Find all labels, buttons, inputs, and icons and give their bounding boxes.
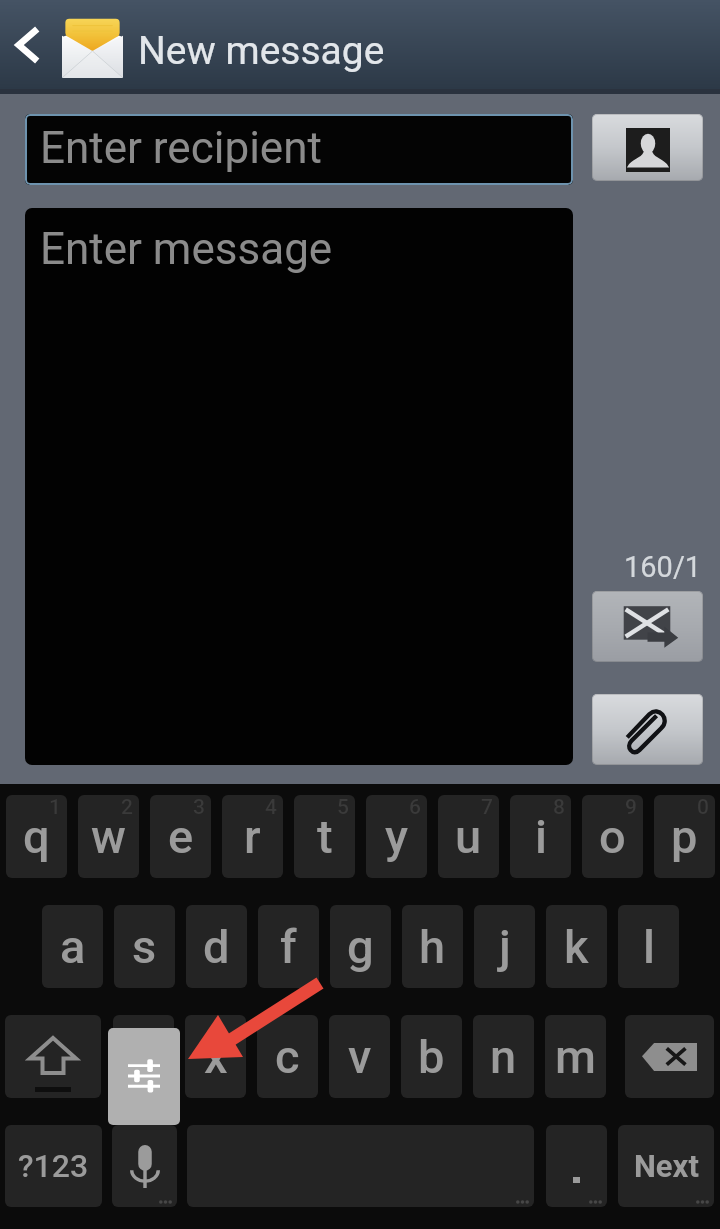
- staticText: a: [60, 919, 86, 974]
- button[interactable]: p: [654, 795, 715, 878]
- button[interactable]: e: [150, 795, 211, 878]
- staticText: 160/1: [624, 550, 702, 584]
- button[interactable]: Send message: [592, 591, 703, 662]
- staticText: 1: [49, 795, 61, 820]
- button[interactable]: r: [222, 795, 283, 878]
- staticText: 4: [265, 795, 277, 820]
- staticText: v: [348, 1029, 372, 1084]
- button[interactable]: g: [330, 905, 391, 988]
- staticText: p: [671, 809, 698, 864]
- button[interactable]: Navigate up: [0, 0, 56, 89]
- button[interactable]: w: [78, 795, 139, 878]
- button[interactable]: Next: [618, 1125, 714, 1207]
- staticText: w: [91, 809, 126, 864]
- button[interactable]: Voice input: [112, 1125, 177, 1207]
- staticText: s: [132, 919, 157, 974]
- button[interactable]: u: [438, 795, 499, 878]
- button[interactable]: c: [257, 1015, 318, 1098]
- staticText: New message: [138, 28, 385, 74]
- button[interactable]: Shift: [5, 1015, 101, 1098]
- button[interactable]: l: [618, 905, 679, 988]
- staticText: 8: [553, 795, 565, 820]
- button[interactable]: Attach file: [592, 694, 703, 765]
- button[interactable]: k: [546, 905, 607, 988]
- staticText: r: [244, 809, 261, 864]
- button[interactable]: s: [114, 905, 175, 988]
- button[interactable]: i: [510, 795, 571, 878]
- button[interactable]: t: [294, 795, 355, 878]
- staticText: h: [419, 919, 446, 974]
- button[interactable]: b: [401, 1015, 462, 1098]
- button[interactable]: a: [42, 905, 103, 988]
- button[interactable]: Enter recipient: [25, 114, 573, 185]
- staticText: z: [132, 1029, 156, 1084]
- staticText: 0: [697, 795, 709, 820]
- button[interactable]: j: [474, 905, 535, 988]
- staticText: 9: [625, 795, 637, 820]
- button[interactable]: q: [6, 795, 67, 878]
- staticText: n: [490, 1029, 517, 1084]
- button[interactable]: n: [473, 1015, 534, 1098]
- staticText: f: [280, 919, 297, 974]
- button[interactable]: f: [258, 905, 319, 988]
- staticText: g: [347, 919, 374, 974]
- button[interactable]: Select contacts: [592, 114, 703, 181]
- button[interactable]: Enter message: [25, 208, 573, 765]
- staticText: t: [317, 809, 333, 864]
- button[interactable]: v: [329, 1015, 390, 1098]
- staticText: ?123: [18, 1147, 89, 1185]
- button[interactable]: h: [402, 905, 463, 988]
- staticText: e: [168, 809, 194, 864]
- button[interactable]: z: [113, 1015, 174, 1098]
- button[interactable]: Keyboard settings: [108, 1028, 180, 1125]
- button[interactable]: m: [545, 1015, 606, 1098]
- staticText: y: [385, 809, 409, 864]
- button[interactable]: ?123: [5, 1125, 102, 1207]
- staticText: 3: [193, 795, 205, 820]
- staticText: 7: [481, 795, 493, 820]
- staticText: o: [599, 809, 626, 864]
- button[interactable]: Period: [546, 1125, 607, 1207]
- staticText: 5: [337, 795, 349, 820]
- staticText: Enter recipient: [40, 122, 322, 174]
- button[interactable]: x: [185, 1015, 246, 1098]
- button[interactable]: d: [186, 905, 247, 988]
- staticText: u: [455, 809, 482, 864]
- staticText: 2: [121, 795, 133, 820]
- button[interactable]: y: [366, 795, 427, 878]
- staticText: Enter message: [40, 223, 333, 275]
- staticText: c: [275, 1029, 300, 1084]
- staticText: q: [23, 809, 50, 864]
- staticText: l: [643, 919, 655, 974]
- staticText: m: [555, 1029, 596, 1084]
- staticText: x: [204, 1029, 228, 1084]
- staticText: k: [564, 919, 589, 974]
- staticText: b: [418, 1029, 445, 1084]
- staticText: i: [535, 809, 547, 864]
- button[interactable]: Delete: [625, 1015, 714, 1098]
- staticText: j: [499, 919, 511, 974]
- staticText: d: [203, 919, 230, 974]
- staticText: 6: [409, 795, 421, 820]
- button[interactable]: o: [582, 795, 643, 878]
- staticText: Next: [634, 1148, 699, 1184]
